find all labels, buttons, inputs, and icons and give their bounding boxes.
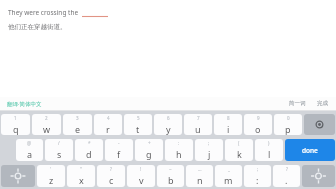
- button[interactable]: -: [105, 139, 133, 161]
- staticText: u: [195, 123, 201, 135]
- staticText: ': [50, 166, 52, 172]
- button[interactable]: ': [37, 165, 65, 187]
- button[interactable]: 7: [184, 114, 212, 135]
- staticText: 他们正在穿越街道。: [8, 23, 67, 31]
- staticText: ;: [208, 140, 210, 146]
- staticText: n: [197, 174, 203, 186]
- button[interactable]: 2: [32, 114, 61, 135]
- staticText: 3: [76, 115, 79, 121]
- staticText: _: [228, 166, 230, 172]
- staticText: i: [227, 123, 230, 135]
- button[interactable]: @: [16, 139, 43, 161]
- staticText: e: [75, 123, 81, 135]
- button[interactable]: 4: [94, 114, 122, 135]
- staticText: s: [57, 148, 62, 160]
- button[interactable]: Shift: [302, 165, 335, 187]
- staticText: :: [256, 174, 259, 186]
- staticText: :: [178, 140, 180, 146]
- button[interactable]: _: [215, 165, 242, 187]
- staticText: ): [268, 140, 270, 146]
- staticText: p: [285, 123, 291, 135]
- staticText: m: [224, 174, 233, 186]
- staticText: x: [79, 174, 84, 186]
- button[interactable]: ?: [97, 165, 125, 187]
- staticText: v: [139, 174, 144, 186]
- staticText: a: [27, 148, 33, 160]
- staticText: h: [176, 148, 182, 160]
- button[interactable]: 3: [63, 114, 92, 135]
- staticText: j: [208, 148, 211, 160]
- button[interactable]: 8: [214, 114, 242, 135]
- staticText: (: [238, 140, 240, 146]
- staticText: 9: [257, 115, 260, 121]
- button[interactable]: ): [255, 139, 283, 161]
- button[interactable]: done: [285, 139, 335, 161]
- staticText: 1: [14, 115, 17, 121]
- button[interactable]: ~: [157, 165, 184, 187]
- staticText: b: [168, 174, 174, 186]
- staticText: f: [117, 148, 121, 160]
- button[interactable]: 简一词: [289, 100, 306, 107]
- staticText: 8: [227, 115, 230, 121]
- button[interactable]: 9: [244, 114, 272, 135]
- button[interactable]: +: [135, 139, 163, 161]
- staticText: l: [268, 148, 271, 160]
- staticText: 2: [45, 115, 48, 121]
- staticText: 0: [287, 115, 290, 121]
- staticText: *: [88, 140, 91, 146]
- staticText: 5: [137, 115, 140, 121]
- staticText: ?: [286, 166, 288, 172]
- staticText: !: [140, 166, 142, 172]
- staticText: +: [148, 140, 151, 146]
- button[interactable]: …: [186, 165, 213, 187]
- button[interactable]: 翻译·简体中文: [7, 100, 42, 108]
- staticText: They were crossing the: [8, 8, 79, 17]
- staticText: g: [146, 148, 152, 160]
- staticText: 4: [107, 115, 110, 121]
- staticText: ?: [110, 166, 112, 172]
- button[interactable]: *: [75, 139, 103, 161]
- button[interactable]: :: [165, 139, 193, 161]
- staticText: …: [198, 166, 202, 172]
- staticText: z: [49, 174, 54, 186]
- staticText: ;: [257, 166, 259, 172]
- staticText: d: [86, 148, 92, 160]
- staticText: 7: [197, 115, 200, 121]
- button[interactable]: 1: [1, 114, 30, 135]
- button[interactable]: ?: [273, 165, 300, 187]
- staticText: q: [13, 123, 19, 135]
- staticText: k: [237, 148, 242, 160]
- staticText: /: [58, 140, 60, 146]
- button[interactable]: ;: [195, 139, 223, 161]
- staticText: .: [285, 174, 288, 186]
- staticText: r: [106, 123, 110, 135]
- staticText: ~: [169, 166, 172, 172]
- staticText: t: [136, 123, 140, 135]
- staticText: w: [43, 123, 51, 135]
- staticText: c: [109, 174, 114, 186]
- button[interactable]: !: [127, 165, 155, 187]
- button[interactable]: Shift: [1, 165, 35, 187]
- button[interactable]: ": [67, 165, 95, 187]
- staticText: ": [80, 166, 82, 172]
- staticText: @: [27, 140, 32, 146]
- staticText: -: [118, 140, 120, 146]
- staticText: o: [255, 123, 261, 135]
- button[interactable]: /: [45, 139, 73, 161]
- button[interactable]: (: [225, 139, 253, 161]
- staticText: y: [166, 123, 171, 135]
- button[interactable]: 5: [124, 114, 152, 135]
- staticText: 6: [167, 115, 170, 121]
- staticText: done: [302, 146, 318, 155]
- button[interactable]: 0: [274, 114, 302, 135]
- button[interactable]: 完成: [317, 100, 328, 107]
- button[interactable]: ;: [244, 165, 271, 187]
- button[interactable]: 6: [154, 114, 182, 135]
- button[interactable]: Backspace: [304, 114, 335, 135]
